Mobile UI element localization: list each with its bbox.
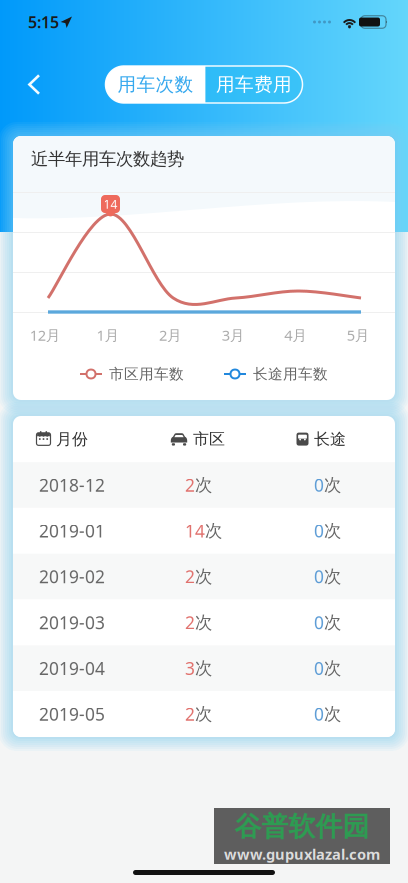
- staticText: 4月: [284, 325, 307, 345]
- staticText: 3: [185, 657, 195, 680]
- staticText: 次: [324, 566, 341, 587]
- staticText: 月份: [56, 429, 88, 449]
- staticText: 1月: [96, 325, 119, 345]
- staticText: 次: [195, 474, 212, 496]
- staticText: 0: [314, 702, 324, 725]
- staticText: 2: [185, 702, 195, 725]
- staticText: 2: [185, 473, 195, 496]
- staticText: 14: [103, 196, 117, 212]
- staticText: 2018-12: [39, 473, 105, 496]
- staticText: 次: [195, 703, 212, 725]
- button[interactable]: 用车次数: [105, 66, 205, 103]
- staticText: 次: [195, 658, 212, 679]
- staticText: 0: [314, 473, 324, 496]
- staticText: 次: [195, 566, 212, 587]
- staticText: 2月: [159, 325, 182, 345]
- staticText: 次: [205, 520, 222, 541]
- button[interactable]: 用车费用: [205, 66, 302, 103]
- staticText: 长途用车数: [253, 365, 328, 383]
- staticText: 次: [324, 658, 341, 679]
- staticText: 长途: [314, 429, 346, 449]
- staticText: 2: [185, 565, 195, 588]
- staticText: 用车费用: [216, 73, 292, 96]
- staticText: 次: [324, 703, 341, 725]
- staticText: 5月: [347, 325, 370, 345]
- staticText: 次: [324, 520, 341, 541]
- staticText: 用车次数: [117, 73, 193, 96]
- staticText: 2: [185, 611, 195, 634]
- staticText: 次: [324, 612, 341, 633]
- staticText: 市区: [193, 429, 225, 449]
- staticText: 次: [195, 612, 212, 633]
- staticText: 2019-03: [39, 611, 105, 634]
- staticText: 0: [314, 519, 324, 542]
- staticText: 市区用车数: [109, 365, 184, 383]
- staticText: www.gupuxlazal.com: [224, 844, 380, 864]
- staticText: 次: [324, 474, 341, 496]
- button[interactable]: Back: [0, 60, 64, 109]
- staticText: 0: [314, 565, 324, 588]
- staticText: 14: [185, 519, 205, 542]
- staticText: 2019-02: [39, 565, 105, 588]
- staticText: 0: [314, 611, 324, 634]
- staticText: 12月: [30, 325, 61, 345]
- staticText: 5:15: [28, 11, 59, 33]
- staticText: 近半年用车次数趋势: [31, 148, 184, 170]
- staticText: 谷普软件园: [234, 810, 369, 843]
- staticText: 2019-01: [39, 519, 105, 542]
- staticText: 2019-04: [39, 657, 105, 680]
- staticText: 3月: [222, 325, 245, 345]
- staticText: 0: [314, 657, 324, 680]
- staticText: 2019-05: [39, 702, 105, 725]
